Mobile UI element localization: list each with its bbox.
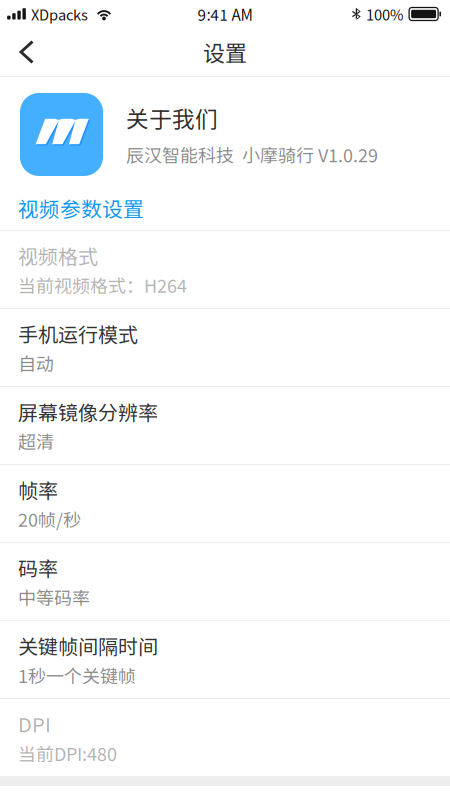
staticText: 码率 (18, 553, 58, 582)
button[interactable]: 帧率 (0, 465, 450, 543)
staticText: 20帧/秒 (18, 506, 81, 532)
staticText: 超清 (18, 428, 54, 454)
staticText: 辰汉智能科技 小摩骑行 V1.0.29 (126, 141, 378, 167)
staticText: 1秒一个关键帧 (18, 662, 136, 688)
staticText: 当前视频格式：H264 (18, 272, 187, 298)
button[interactable]: 关于我们 (0, 77, 450, 193)
staticText: 帧率 (18, 475, 58, 504)
button[interactable]: Back (5, 28, 47, 76)
staticText: 中等码率 (18, 584, 90, 610)
button[interactable]: 视频格式 (0, 231, 450, 309)
staticText: 自动 (18, 350, 54, 376)
staticText: 视频参数设置 (18, 193, 144, 223)
staticText: 设置 (203, 36, 247, 68)
button[interactable]: 屏幕镜像分辨率 (0, 387, 450, 465)
staticText: 关于我们 (126, 102, 218, 134)
staticText: 关键帧间隔时间 (18, 631, 158, 660)
staticText: 屏幕镜像分辨率 (18, 397, 158, 426)
staticText: DPI (18, 709, 51, 738)
staticText: 9:41 AM (197, 3, 252, 25)
button[interactable]: DPI (0, 699, 450, 777)
staticText: XDpacks (31, 3, 88, 25)
button[interactable]: 关键帧间隔时间 (0, 621, 450, 699)
staticText: 100% (366, 3, 404, 25)
button[interactable]: 手机运行模式 (0, 309, 450, 387)
button[interactable]: 码率 (0, 543, 450, 621)
staticText: 当前DPI:480 (18, 740, 117, 766)
staticText: 手机运行模式 (18, 319, 138, 348)
staticText: 视频格式 (18, 241, 98, 270)
